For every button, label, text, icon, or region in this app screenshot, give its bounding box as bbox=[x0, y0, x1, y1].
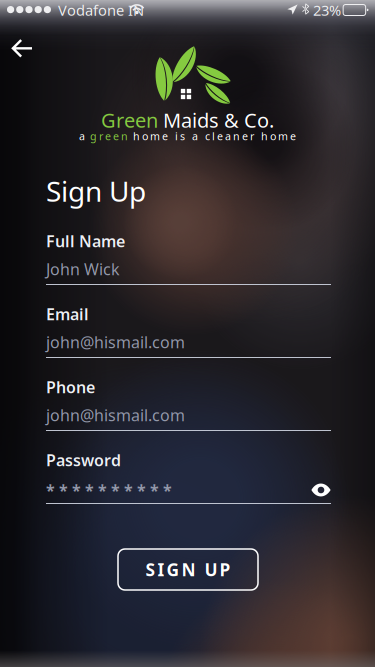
staticText: Email bbox=[46, 303, 89, 325]
staticText: Full Name bbox=[46, 230, 125, 252]
staticText: john@hismail.com bbox=[46, 404, 185, 426]
button[interactable]: Back bbox=[0, 27, 44, 70]
staticText: john@hismail.com bbox=[46, 331, 185, 353]
staticText: Green bbox=[101, 107, 158, 133]
staticText: h o m e i s a c l e a n e r h o m e bbox=[133, 129, 296, 143]
button[interactable]: Show password bbox=[304, 475, 338, 505]
staticText: a bbox=[79, 129, 90, 143]
staticText: Vodafone IN bbox=[58, 0, 144, 20]
staticText: John Wick bbox=[46, 258, 120, 280]
staticText: S I G N U P bbox=[145, 558, 230, 581]
staticText: g r e e n bbox=[90, 129, 133, 143]
staticText: Password bbox=[46, 449, 121, 471]
staticText: Sign Up bbox=[46, 172, 146, 210]
staticText: 23% bbox=[313, 0, 341, 20]
staticText: Phone bbox=[46, 376, 95, 398]
staticText: * * * * * * * * * * bbox=[46, 479, 172, 501]
button[interactable]: S I G N U P bbox=[118, 549, 258, 590]
staticText: Maids & Co. bbox=[158, 107, 274, 133]
